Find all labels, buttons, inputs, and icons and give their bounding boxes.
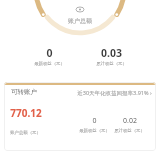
staticText: 0.03 xyxy=(101,46,122,60)
staticText: 最新收益（元） xyxy=(34,61,65,67)
staticText: 0 xyxy=(46,46,53,60)
staticText: 可转账户 xyxy=(11,88,37,96)
staticText: 0.02 xyxy=(123,116,137,126)
staticText: 累计收益（元） xyxy=(114,128,145,134)
staticText: 账户总额（元） xyxy=(10,130,41,136)
staticText: 近30天年化收益回报率3.91% › xyxy=(77,89,152,97)
staticText: 累计收益（元） xyxy=(96,61,127,67)
staticText: 0 xyxy=(92,116,97,126)
staticText: 账户总额 xyxy=(0,17,160,25)
button[interactable]: Toggle balance visibility xyxy=(75,4,85,14)
staticText: 最新收益（元） xyxy=(79,128,110,134)
staticText: 770.12 xyxy=(10,106,42,120)
button[interactable]: 可转账户 xyxy=(4,82,156,151)
